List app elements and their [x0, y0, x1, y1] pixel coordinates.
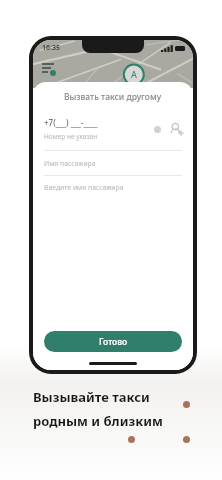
staticText: Готово [99, 336, 128, 348]
button[interactable]: +7(___) ___-____ [33, 117, 193, 141]
button[interactable]: Choose contact [168, 121, 184, 137]
staticText: родным и близким [33, 412, 163, 430]
button[interactable]: Введите имя пассажира [33, 183, 193, 192]
staticText: +7(___) ___-____ [44, 117, 98, 128]
other: Route [41, 60, 55, 74]
button[interactable]: Готово [44, 331, 182, 352]
staticText: Вызывайте такси [33, 388, 150, 406]
staticText: Имя пассажира [44, 159, 96, 168]
staticText: Номер не указан [44, 132, 98, 141]
button[interactable]: Clear [152, 124, 162, 134]
staticText: Введите имя пассажира [44, 183, 124, 192]
staticText: A [131, 68, 137, 80]
staticText: Вызвать такси другому [64, 91, 162, 103]
staticText: 16:35 [42, 43, 60, 53]
